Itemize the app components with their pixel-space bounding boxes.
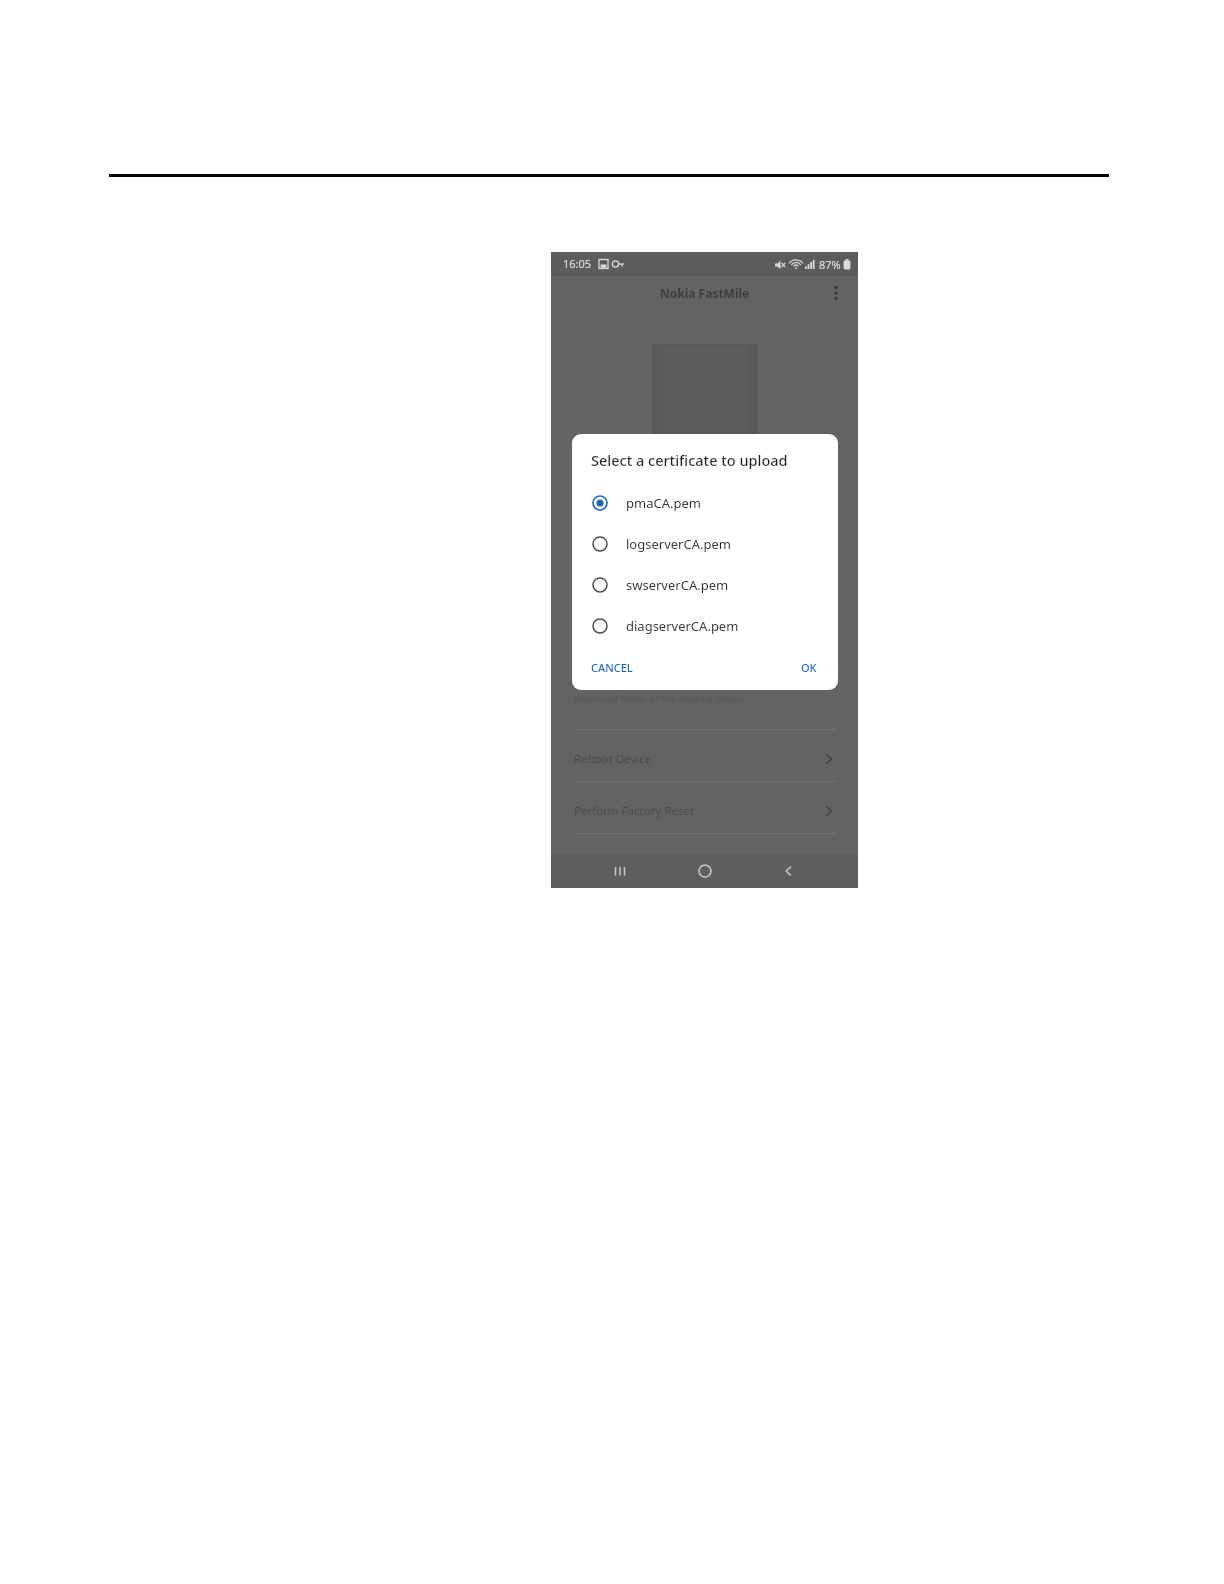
staticText: Reboot Device bbox=[574, 751, 822, 767]
button[interactable]: Home bbox=[688, 854, 722, 888]
button[interactable]: pmaCA.pem bbox=[572, 482, 838, 523]
staticText: Select a certificate to upload bbox=[591, 450, 788, 470]
staticText: OK bbox=[801, 660, 817, 675]
staticText: CANCEL bbox=[591, 660, 633, 675]
staticText: 87% bbox=[819, 257, 841, 272]
staticText: 16:05 bbox=[563, 256, 592, 271]
staticText: download folder of the android device. bbox=[574, 692, 747, 705]
button[interactable]: CANCEL bbox=[584, 655, 640, 680]
button[interactable]: More options bbox=[824, 281, 848, 305]
button[interactable]: OK bbox=[794, 655, 824, 680]
button[interactable]: Perform Factory Reset bbox=[574, 790, 836, 832]
button[interactable]: Back bbox=[772, 854, 806, 888]
staticText: swserverCA.pem bbox=[626, 576, 729, 594]
button[interactable]: Recents bbox=[603, 854, 637, 888]
button[interactable]: diagserverCA.pem bbox=[572, 605, 838, 646]
staticText: Nokia FastMile bbox=[660, 285, 750, 301]
staticText: logserverCA.pem bbox=[626, 535, 731, 553]
button[interactable]: swserverCA.pem bbox=[572, 564, 838, 605]
button[interactable]: logserverCA.pem bbox=[572, 523, 838, 564]
staticText: diagserverCA.pem bbox=[626, 617, 739, 635]
staticText: pmaCA.pem bbox=[626, 494, 701, 512]
staticText: Perform Factory Reset bbox=[574, 803, 822, 819]
